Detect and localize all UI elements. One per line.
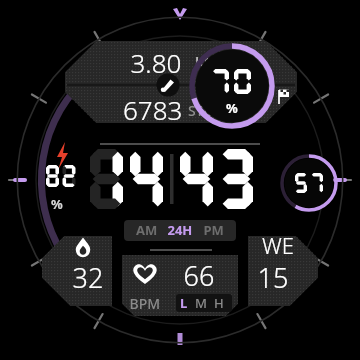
button[interactable]: Time 14:43 <box>86 149 254 209</box>
button[interactable]: Distance and steps <box>66 41 296 123</box>
button[interactable]: Heart rate 66 BPM <box>122 255 238 316</box>
button[interactable]: Goal 70 percent <box>192 46 272 126</box>
button[interactable]: Calories 32 <box>42 236 112 306</box>
button[interactable]: Battery 82 percent charging <box>40 140 80 210</box>
button[interactable]: 24 hour time format <box>124 220 236 241</box>
button[interactable]: Date Wednesday 15 <box>248 236 318 306</box>
button[interactable]: Secondary metric 57 <box>282 156 336 210</box>
